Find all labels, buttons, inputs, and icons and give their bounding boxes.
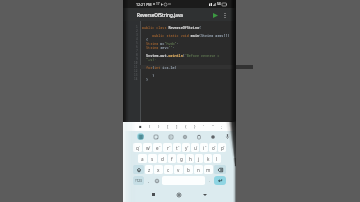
button[interactable]: Period xyxy=(206,176,213,185)
staticText: public class ReverseOfString{ xyxy=(142,25,201,29)
button[interactable]: w xyxy=(143,143,152,152)
button[interactable]: Run xyxy=(211,10,220,20)
staticText: 12 xyxy=(134,69,138,73)
button[interactable]: r xyxy=(163,143,172,152)
staticText: 11 xyxy=(134,65,138,69)
button[interactable]: t xyxy=(173,143,181,152)
staticText: 54 xyxy=(217,2,221,6)
button[interactable]: GIF xyxy=(163,131,178,142)
button[interactable]: Recents xyxy=(141,187,166,202)
staticText: ; xyxy=(221,124,223,130)
staticText: public static void main(String args[]) xyxy=(142,33,230,37)
staticText: 13 xyxy=(134,73,138,77)
button[interactable]: Switch keyboard xyxy=(133,131,148,142)
button[interactable]: s xyxy=(148,154,157,163)
staticText: 6 xyxy=(136,45,138,49)
button[interactable]: b xyxy=(184,165,193,174)
staticText: l xyxy=(216,156,218,162)
staticText: { xyxy=(185,124,187,130)
button[interactable]: x xyxy=(154,165,163,174)
button[interactable]: c xyxy=(164,165,173,174)
staticText: 8 xyxy=(136,53,138,57)
button[interactable]: { xyxy=(181,122,190,131)
button[interactable]: q xyxy=(133,143,142,152)
button[interactable]: Enter xyxy=(214,176,226,185)
button[interactable]: i xyxy=(200,143,208,152)
button[interactable]: ( xyxy=(145,122,154,131)
button[interactable]: ] xyxy=(172,122,181,131)
staticText: 9 xyxy=(136,57,138,61)
staticText: u xyxy=(194,145,197,151)
staticText: m xyxy=(206,167,211,173)
button[interactable]: Home xyxy=(166,187,192,202)
button[interactable]: Emoji xyxy=(153,176,161,185)
button[interactable]: n xyxy=(194,165,203,174)
staticText: h xyxy=(189,156,192,162)
staticText: } xyxy=(142,77,149,81)
staticText: 6 xyxy=(187,144,189,147)
button[interactable]: y xyxy=(182,143,190,152)
staticText: String rev=""; xyxy=(142,45,175,49)
button[interactable]: u xyxy=(191,143,199,152)
button[interactable]: m xyxy=(204,165,213,174)
button[interactable]: } xyxy=(190,122,199,131)
staticText: " xyxy=(212,124,214,130)
staticText: "+s); xyxy=(142,57,157,61)
button[interactable]: d xyxy=(158,154,167,163)
staticText: ▪ xyxy=(139,124,142,129)
button[interactable]: Backspace xyxy=(214,165,226,174)
button[interactable]: k xyxy=(204,154,212,163)
staticText: } xyxy=(142,73,155,77)
button[interactable]: Comma xyxy=(145,176,152,185)
button[interactable]: l xyxy=(213,154,221,163)
button[interactable]: z xyxy=(145,165,153,174)
button[interactable]: j xyxy=(195,154,203,163)
staticText: ) xyxy=(158,124,160,130)
staticText: 5 xyxy=(178,144,180,147)
staticText: w xyxy=(146,145,150,151)
staticText: s xyxy=(151,156,154,162)
button[interactable]: " xyxy=(208,122,217,131)
staticText: 3 xyxy=(136,33,138,37)
button[interactable]: e xyxy=(153,143,162,152)
staticText: 0 xyxy=(223,144,225,147)
button[interactable]: Shift xyxy=(133,165,144,174)
staticText: q xyxy=(136,145,139,151)
button[interactable]: v xyxy=(174,165,183,174)
staticText: j xyxy=(198,156,200,162)
button[interactable]: Settings xyxy=(178,131,192,142)
staticText: String p="hydo"; xyxy=(142,41,179,45)
button[interactable]: Theme xyxy=(206,131,220,142)
button[interactable]: g xyxy=(177,154,185,163)
button[interactable]: o xyxy=(209,143,217,152)
staticText: t xyxy=(176,145,178,151)
staticText: x xyxy=(157,167,160,173)
staticText: p xyxy=(221,145,224,151)
staticText: d xyxy=(161,156,164,162)
button[interactable]: Voice input xyxy=(220,131,234,142)
button[interactable]: Clipboard xyxy=(192,131,206,142)
button[interactable]: ▪ xyxy=(136,122,145,131)
button[interactable]: p xyxy=(218,143,226,152)
button[interactable]: [ xyxy=(163,122,172,131)
button[interactable]: More options xyxy=(221,10,228,20)
button[interactable]: ?123 xyxy=(133,176,144,185)
staticText: b xyxy=(187,167,190,173)
button[interactable]: ' xyxy=(199,122,208,131)
button[interactable]: Back xyxy=(192,187,218,202)
staticText: 4 xyxy=(169,144,171,147)
staticText: 14 xyxy=(134,77,138,81)
staticText: ] xyxy=(176,124,178,130)
button[interactable]: ; xyxy=(217,122,226,131)
button[interactable]: Stickers xyxy=(148,131,163,142)
staticText: 5 xyxy=(136,41,138,45)
staticText: } xyxy=(194,124,196,130)
button[interactable]: h xyxy=(186,154,194,163)
button[interactable]: f xyxy=(168,154,176,163)
staticText: 12:21 PM xyxy=(136,2,152,7)
button[interactable]: a xyxy=(138,154,147,163)
staticText: { xyxy=(142,37,149,41)
button[interactable]: ) xyxy=(154,122,163,131)
staticText: c xyxy=(167,167,170,173)
